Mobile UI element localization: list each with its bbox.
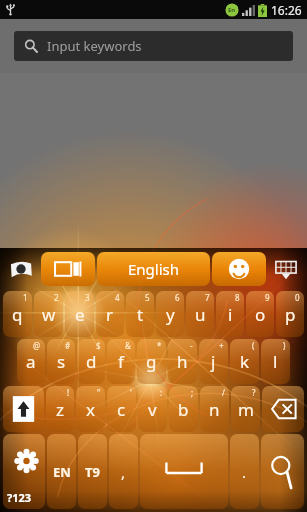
button[interactable]: 6 [156, 291, 184, 337]
button[interactable]: + [199, 339, 228, 384]
button[interactable]: " [76, 386, 105, 432]
staticText: / [222, 387, 225, 398]
staticText: 3 [85, 292, 90, 303]
button[interactable]: Hide keyboard [268, 252, 304, 286]
button[interactable]: Input keywords [14, 31, 293, 61]
staticText: b [178, 398, 189, 421]
staticText: j [211, 350, 216, 373]
button[interactable]: ) [261, 339, 290, 384]
staticText: 6 [175, 292, 180, 303]
button[interactable]: Space [140, 434, 228, 509]
staticText: 1 [23, 292, 28, 303]
staticText: ; [191, 387, 194, 398]
staticText: g [146, 350, 157, 373]
staticText: ) [283, 340, 286, 351]
staticText: " [97, 387, 101, 398]
button[interactable]: English [97, 252, 210, 286]
staticText: ?123 [7, 490, 32, 505]
staticText: . [242, 462, 247, 482]
button[interactable]: EN [47, 434, 76, 509]
button[interactable]: 2 [34, 291, 63, 337]
staticText: $ [96, 340, 101, 351]
button[interactable]: # [47, 339, 75, 384]
staticText: * [157, 340, 162, 351]
button[interactable]: Emoji [212, 252, 266, 286]
staticText: l [273, 350, 278, 373]
button[interactable]: 9 [246, 291, 274, 337]
button[interactable]: 0 [276, 291, 304, 337]
staticText: # [65, 340, 71, 351]
staticText: T9 [85, 463, 100, 481]
button[interactable]: / [200, 386, 229, 432]
staticText: a [26, 350, 36, 373]
button[interactable]: $ [77, 339, 105, 384]
staticText: q [12, 303, 23, 326]
staticText: 8 [235, 292, 240, 303]
staticText: ? [252, 387, 256, 398]
staticText: EN [53, 463, 71, 481]
button[interactable]: Search [261, 434, 304, 509]
staticText: x [86, 398, 95, 421]
staticText: z [56, 398, 64, 421]
staticText: s [57, 350, 66, 373]
staticText: 9 [265, 292, 270, 303]
button[interactable]: & [107, 339, 135, 384]
button[interactable]: Shift [3, 386, 44, 432]
staticText: 16:26 [271, 2, 302, 18]
button[interactable]: . [230, 434, 259, 509]
staticText: Input keywords [47, 37, 142, 55]
staticText: y [166, 303, 175, 326]
staticText: , [121, 462, 126, 482]
staticText: 7 [205, 292, 210, 303]
staticText: n [209, 398, 220, 421]
staticText: 0 [295, 292, 300, 303]
button[interactable]: T9 [78, 434, 107, 509]
staticText: h [177, 350, 188, 373]
staticText: f [118, 350, 124, 373]
staticText: ! [67, 387, 70, 398]
button[interactable]: Symbols and settings [3, 434, 45, 509]
staticText: c [117, 398, 126, 421]
staticText: 5 [145, 292, 150, 303]
button[interactable]: ? [231, 386, 260, 432]
staticText: k [240, 350, 250, 373]
button[interactable]: Backspace [262, 386, 304, 432]
button[interactable]: , [109, 434, 138, 509]
button[interactable]: 5 [126, 291, 154, 337]
button[interactable]: 3 [65, 291, 94, 337]
staticText: e [75, 303, 85, 326]
staticText: w [42, 303, 56, 326]
staticText: i [228, 303, 233, 326]
button[interactable]: 1 [3, 291, 32, 337]
button[interactable]: ( [230, 339, 259, 384]
button[interactable]: 4 [96, 291, 124, 337]
button[interactable]: @ [17, 339, 45, 384]
staticText: : [160, 387, 163, 398]
button[interactable]: 7 [186, 291, 214, 337]
staticText: o [255, 303, 266, 326]
staticText: v [148, 398, 157, 421]
staticText: u [195, 303, 206, 326]
button[interactable]: : [138, 386, 167, 432]
staticText: d [86, 350, 97, 373]
button[interactable]: 8 [216, 291, 244, 337]
button[interactable]: - [168, 339, 197, 384]
staticText: t [137, 303, 144, 326]
staticText: + [219, 340, 224, 351]
button[interactable]: * [137, 339, 166, 384]
button[interactable]: Switch layout [41, 252, 95, 286]
staticText: m [238, 398, 254, 421]
staticText: @ [33, 340, 41, 351]
button[interactable]: GO keyboard menu [3, 252, 39, 286]
staticText: En [228, 6, 236, 14]
button[interactable]: ; [169, 386, 198, 432]
button[interactable]: ' [107, 386, 136, 432]
button[interactable]: ! [46, 386, 74, 432]
staticText: p [285, 303, 296, 326]
staticText: & [125, 340, 131, 351]
staticText: 4 [115, 292, 120, 303]
staticText: - [190, 340, 193, 351]
staticText: ' [130, 387, 132, 398]
staticText: English [128, 259, 180, 279]
staticText: ( [252, 340, 255, 351]
